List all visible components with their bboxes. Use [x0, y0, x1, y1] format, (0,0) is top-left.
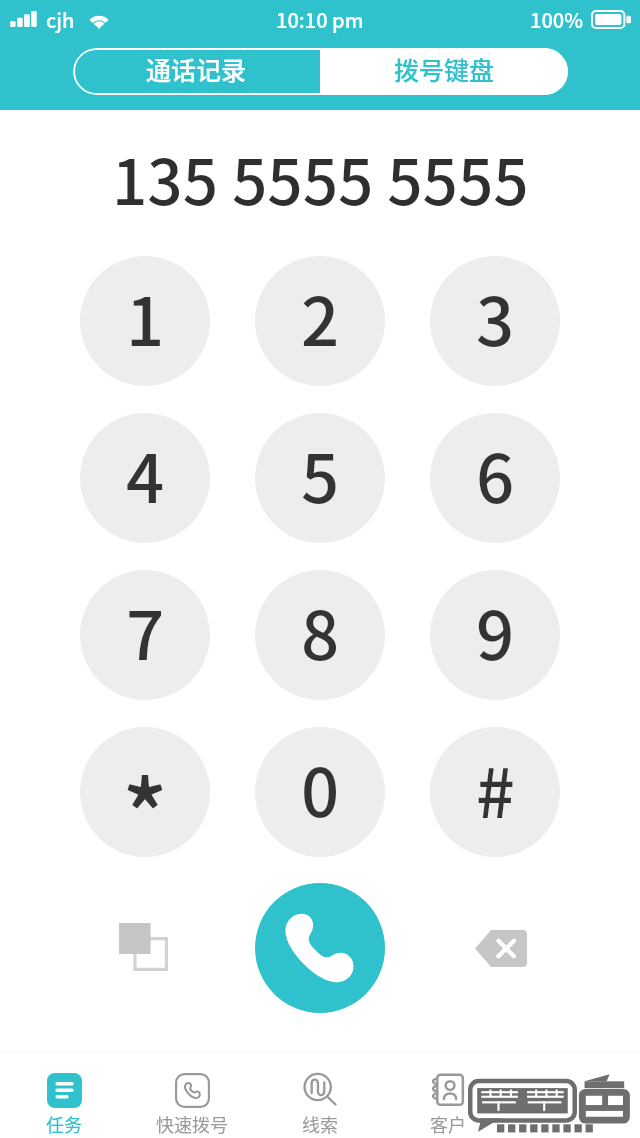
staticText: 100% [530, 5, 583, 34]
staticText: 拨号键盘 [394, 51, 495, 87]
button[interactable]: 4 [80, 413, 210, 543]
staticText: * [122, 741, 168, 857]
button[interactable]: 快速拨号 [128, 1052, 256, 1138]
button[interactable]: Call [255, 883, 385, 1013]
button[interactable]: # [430, 727, 560, 857]
staticText: 任务 [46, 1111, 82, 1137]
staticText: 通话记录 [146, 51, 247, 87]
staticText: # [476, 739, 515, 837]
button[interactable]: 2 [255, 256, 385, 386]
staticText: 9 [476, 582, 515, 679]
staticText: 6 [476, 425, 515, 522]
button[interactable]: 0 [255, 727, 385, 857]
staticText: 客户 [430, 1111, 466, 1137]
staticText: 5 [301, 425, 340, 522]
staticText: 135 5555 5555 [112, 133, 529, 219]
button[interactable]: 5 [255, 413, 385, 543]
staticText: 7 [126, 582, 165, 679]
button[interactable]: 线索 [256, 1052, 384, 1138]
button[interactable]: 6 [430, 413, 560, 543]
staticText: 线索 [302, 1111, 338, 1137]
staticText: cjh [46, 5, 75, 34]
button[interactable]: Backspace [430, 883, 560, 1013]
button[interactable]: 任务 [0, 1052, 128, 1138]
button[interactable]: 通话记录 [73, 48, 320, 95]
staticText: 3 [476, 268, 515, 365]
staticText: 8 [301, 582, 340, 679]
button[interactable]: * [80, 727, 210, 857]
button[interactable]: 1 [80, 256, 210, 386]
button[interactable]: 客户 [384, 1052, 512, 1138]
staticText: 10:10 pm [276, 5, 364, 34]
staticText: 4 [126, 425, 165, 522]
staticText: 2 [301, 268, 340, 365]
staticText: 1 [126, 268, 165, 365]
button[interactable]: 3 [430, 256, 560, 386]
staticText: 快速拨号 [156, 1111, 228, 1137]
button[interactable]: 7 [80, 570, 210, 700]
button[interactable]: Paste number [80, 883, 210, 1013]
staticText: 0 [301, 739, 340, 836]
button[interactable]: 8 [255, 570, 385, 700]
button[interactable]: 拨号键盘 [320, 48, 568, 95]
button[interactable]: 9 [430, 570, 560, 700]
